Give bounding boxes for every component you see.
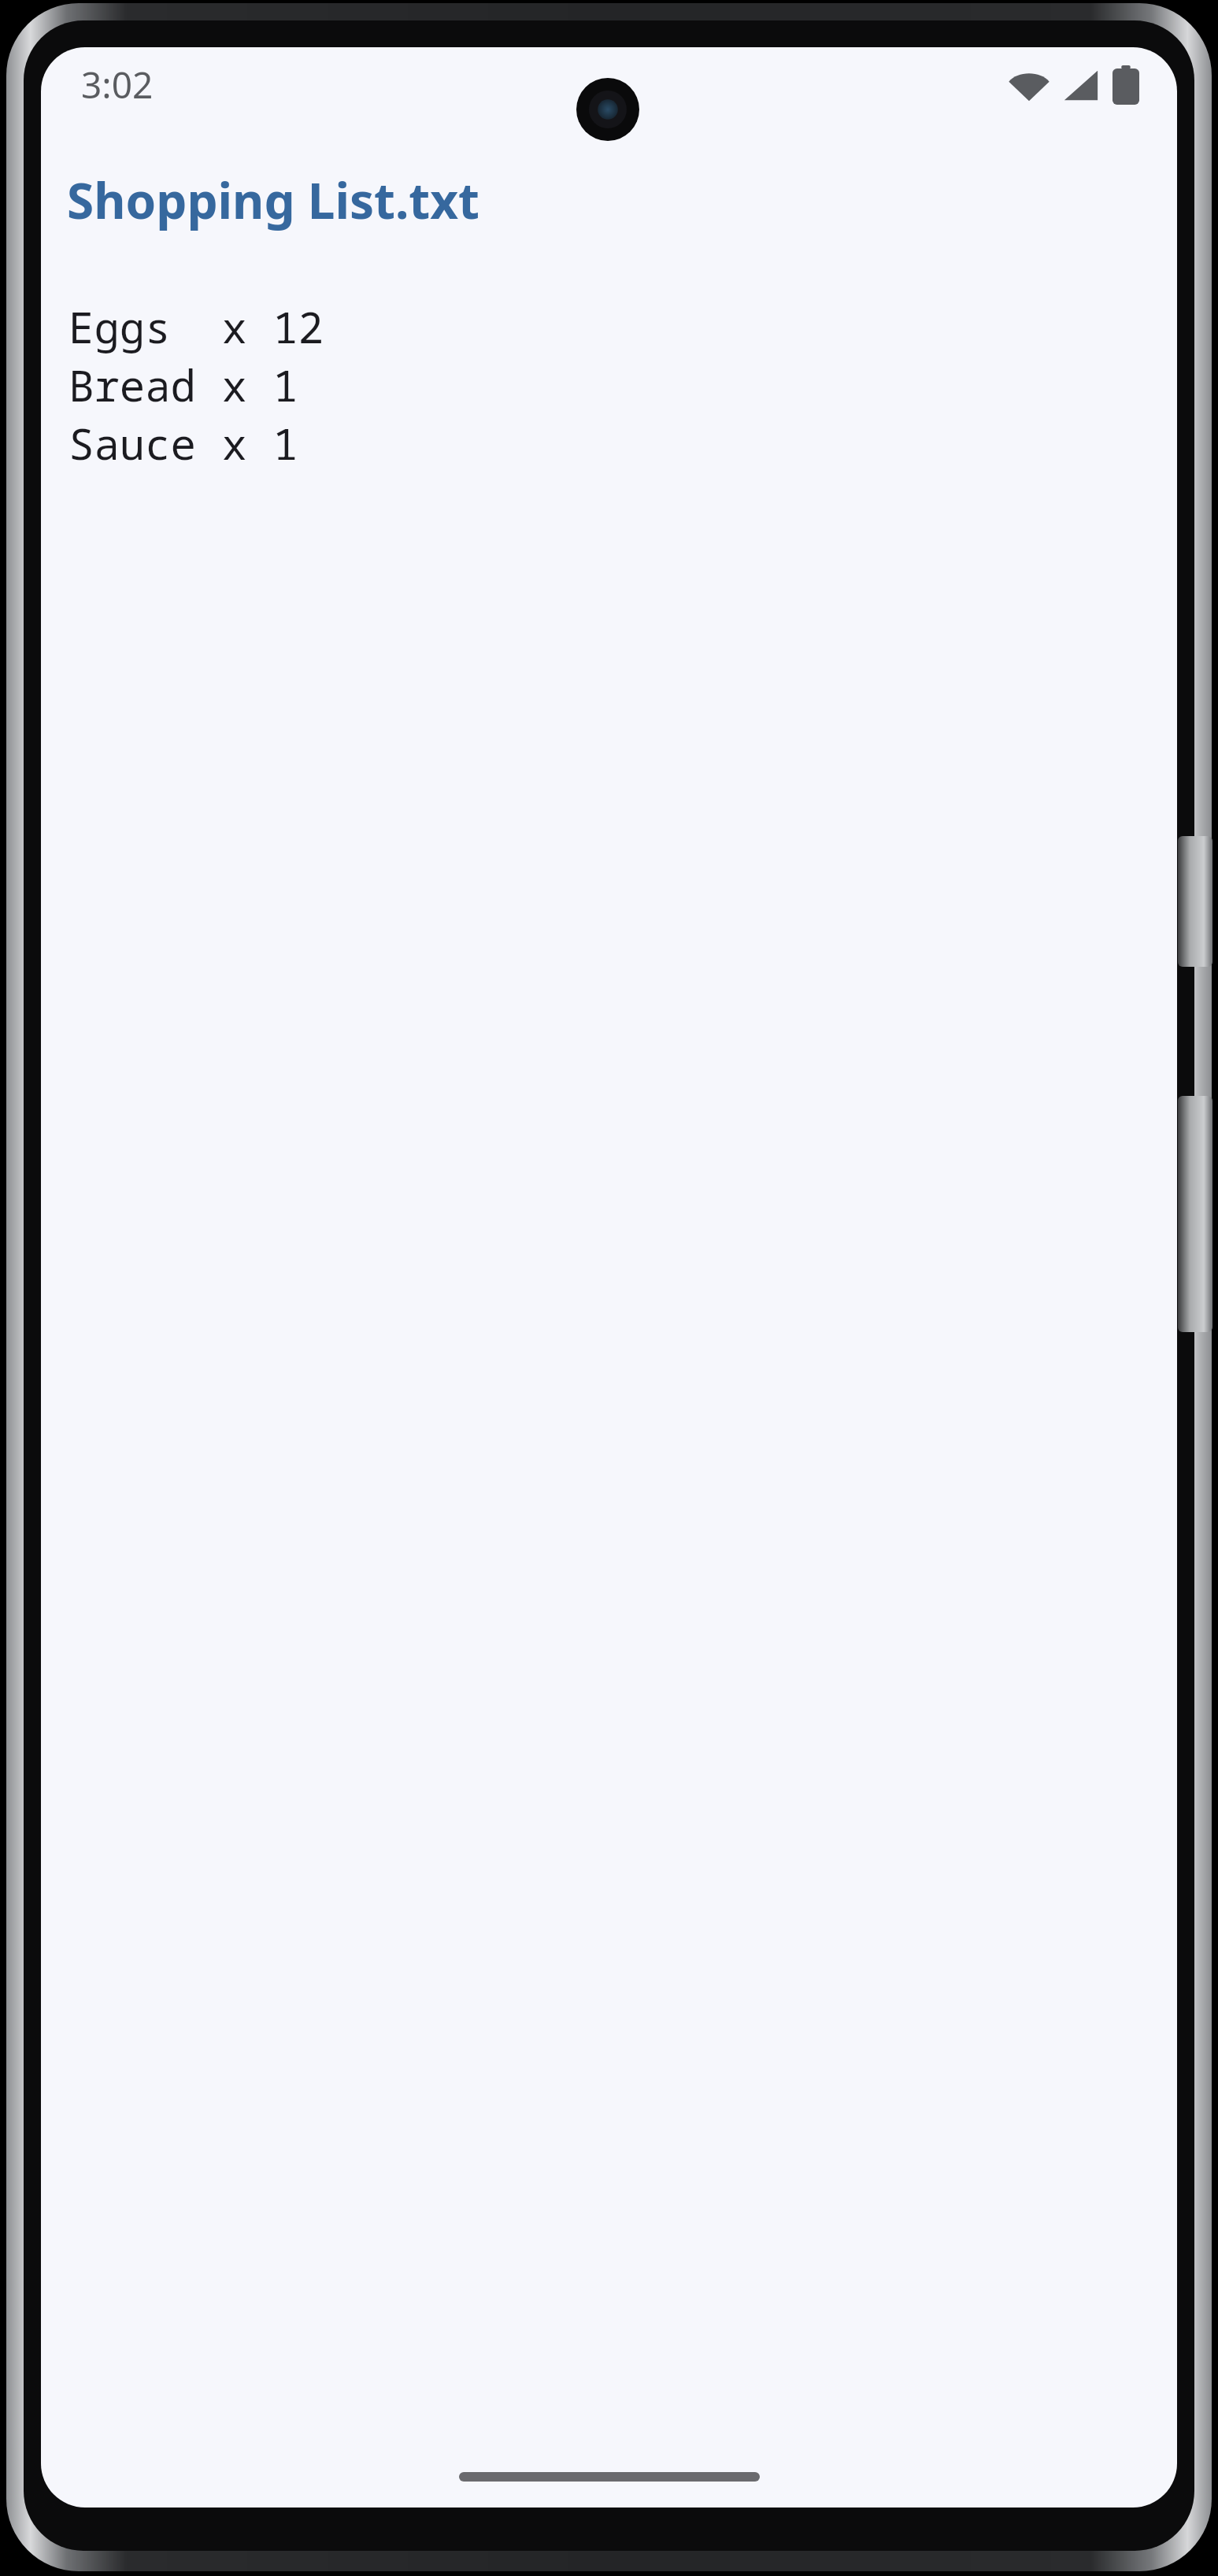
staticText: Sauce x 1 [68,414,298,472]
button[interactable]: Eggs x 12 [68,298,324,472]
staticText: 3:02 [81,60,154,109]
other: Mobile signal [1062,66,1100,104]
staticText: Bread x 1 [68,356,298,414]
button[interactable]: Shopping List.txt [67,167,480,233]
staticText: Eggs x 12 [68,298,324,356]
other: Wi-Fi signal [1009,66,1050,104]
other: Battery full [1112,65,1139,105]
